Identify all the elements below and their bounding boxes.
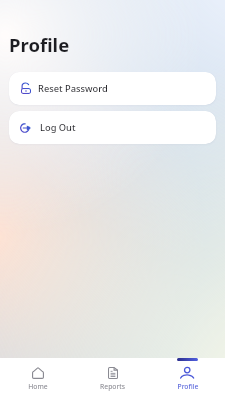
button[interactable]: Reset Password bbox=[9, 72, 216, 105]
staticText: Reset Password bbox=[38, 82, 108, 95]
staticText: Profile bbox=[177, 382, 199, 391]
staticText: Profile bbox=[9, 32, 70, 57]
button[interactable]: Profile bbox=[150, 358, 225, 400]
staticText: Home bbox=[28, 382, 48, 391]
button[interactable]: Home bbox=[0, 358, 75, 400]
button[interactable]: Reports bbox=[75, 358, 150, 400]
staticText: Reports bbox=[100, 382, 125, 391]
button[interactable]: Log Out bbox=[9, 111, 216, 144]
staticText: Log Out bbox=[40, 121, 76, 134]
